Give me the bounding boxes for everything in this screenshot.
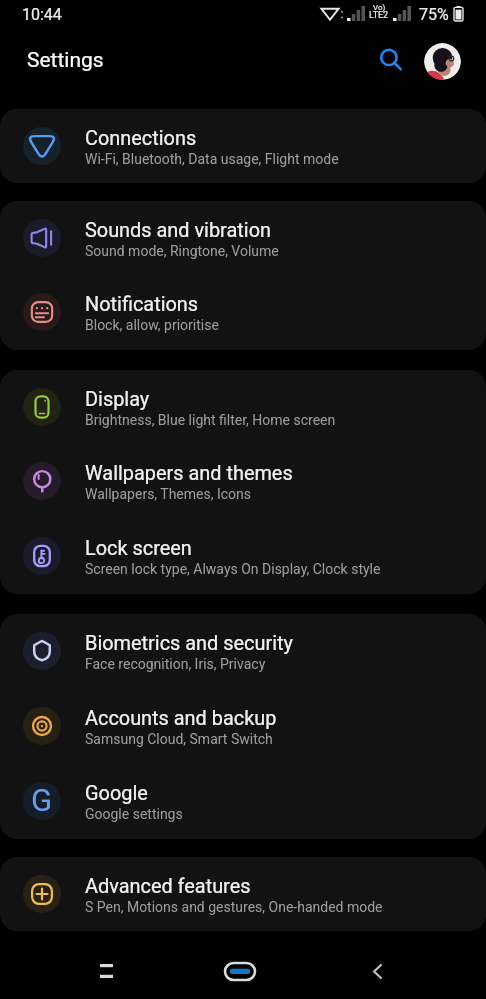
button[interactable]: G — [0, 764, 486, 839]
button[interactable]: Search — [368, 37, 413, 82]
button[interactable]: Lock screen — [0, 519, 486, 594]
button[interactable]: Accounts and backup — [0, 689, 486, 764]
button[interactable]: Display — [0, 370, 486, 444]
staticText: Google — [85, 782, 148, 805]
button[interactable]: Recent apps — [76, 940, 136, 999]
staticText: Sounds and vibration — [85, 219, 271, 242]
staticText: Display — [85, 388, 150, 411]
button[interactable]: Advanced features — [0, 857, 486, 931]
button[interactable]: Home — [210, 940, 270, 999]
button[interactable]: Sounds and vibration — [0, 201, 486, 275]
button[interactable]: Notifications — [0, 275, 486, 350]
staticText: Brightness, Blue light filter, Home scre… — [85, 412, 336, 428]
staticText: Face recognition, Iris, Privacy — [85, 656, 266, 672]
staticText: Accounts and backup — [85, 707, 277, 730]
staticText: Vo) — [373, 3, 386, 12]
button[interactable]: Wallpapers and themes — [0, 444, 486, 519]
button[interactable]: Profile — [424, 43, 461, 80]
staticText: LTE2 — [369, 10, 389, 21]
staticText: Samsung Cloud, Smart Switch — [85, 731, 273, 747]
staticText: S Pen, Motions and gestures, One-handed … — [85, 899, 383, 915]
staticText: 10:44 — [22, 5, 62, 24]
staticText: 75% — [419, 5, 449, 24]
staticText: Google settings — [85, 806, 183, 822]
button[interactable]: Connections — [0, 109, 486, 183]
button[interactable]: Biometrics and security — [0, 614, 486, 689]
staticText: Screen lock type, Always On Display, Clo… — [85, 561, 381, 577]
staticText: Notifications — [85, 293, 199, 316]
staticText: Connections — [85, 127, 197, 150]
button[interactable]: Back — [347, 940, 407, 999]
staticText: Lock screen — [85, 537, 192, 560]
staticText: Advanced features — [85, 875, 251, 898]
staticText: Wi-Fi, Bluetooth, Data usage, Flight mod… — [85, 151, 339, 167]
staticText: Wallpapers and themes — [85, 462, 293, 485]
staticText: Settings — [27, 48, 104, 73]
staticText: G — [31, 782, 53, 818]
staticText: Sound mode, Ringtone, Volume — [85, 243, 279, 259]
staticText: Biometrics and security — [85, 632, 293, 655]
staticText: Block, allow, prioritise — [85, 317, 219, 333]
staticText: Wallpapers, Themes, Icons — [85, 486, 252, 502]
